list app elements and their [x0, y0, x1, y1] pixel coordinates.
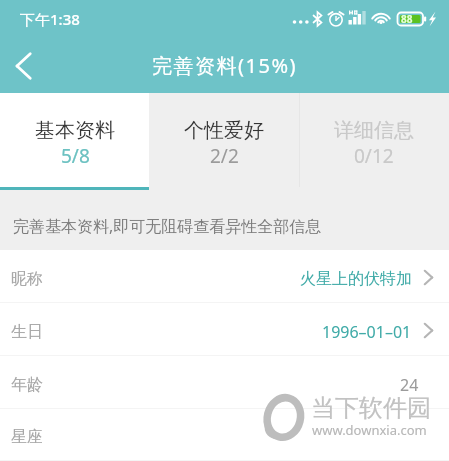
button[interactable]: Back — [0, 38, 48, 93]
staticText: 5/8 — [61, 143, 90, 169]
button[interactable]: 详细信息 — [299, 93, 449, 190]
staticText: 生日 — [11, 322, 43, 342]
staticText: 当下软件园 — [311, 393, 431, 423]
staticText: 完善基本资料,即可无阻碍查看异性全部信息 — [13, 215, 322, 237]
button[interactable]: 基本资料 — [0, 93, 149, 190]
staticText: 个性爱好 — [184, 118, 264, 143]
staticText: 昵称 — [11, 269, 43, 289]
staticText: 0/12 — [354, 143, 394, 169]
button[interactable]: 年龄 — [0, 356, 449, 409]
staticText: 详细信息 — [334, 118, 414, 143]
button[interactable]: 个性爱好 — [149, 93, 299, 190]
staticText: 下午1:38 — [20, 9, 80, 29]
staticText: 2/2 — [210, 143, 239, 169]
staticText: 火星上的伏特加 — [300, 269, 412, 289]
button[interactable]: 星座 — [0, 409, 449, 461]
button[interactable]: 生日 — [0, 303, 449, 356]
staticText: 年龄 — [11, 375, 43, 395]
staticText: www.downxia.com — [312, 421, 427, 439]
staticText: 星座 — [11, 427, 43, 447]
staticText: 完善资料(15%) — [152, 52, 297, 79]
button[interactable]: 昵称 — [0, 250, 449, 303]
staticText: 24 — [400, 374, 419, 396]
staticText: 88 — [401, 12, 413, 26]
staticText: 1996–01–01 — [322, 321, 412, 343]
staticText: 基本资料 — [35, 118, 115, 143]
